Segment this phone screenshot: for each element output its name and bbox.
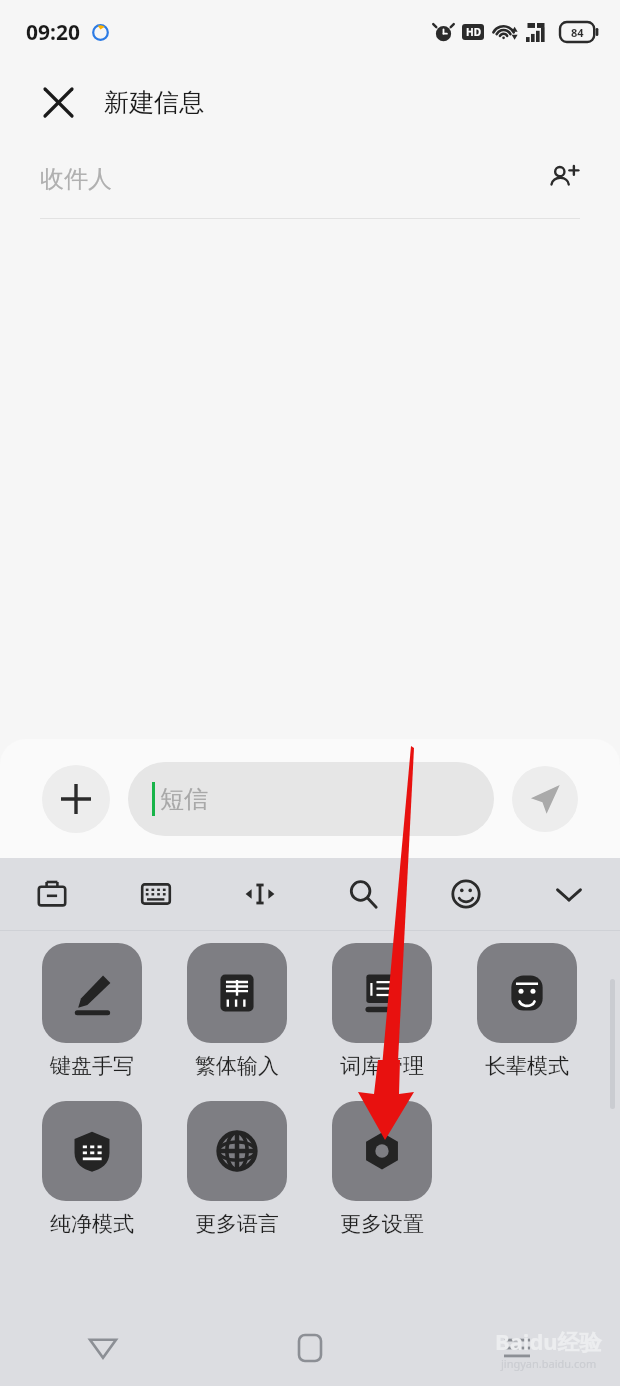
- button[interactable]: Add attachment: [42, 765, 110, 833]
- staticText: 短信: [160, 784, 208, 814]
- staticText: 长辈模式: [485, 1053, 569, 1079]
- button[interactable]: 短信: [152, 762, 494, 836]
- button[interactable]: Send: [512, 766, 578, 832]
- button[interactable]: Search: [311, 858, 414, 930]
- staticText: HD: [466, 25, 481, 39]
- staticText: 收件人: [40, 164, 112, 194]
- button[interactable]: Back: [0, 1310, 206, 1386]
- button[interactable]: Recents: [413, 1310, 620, 1386]
- button[interactable]: 更多设置: [332, 1101, 432, 1237]
- button[interactable]: 更多语言: [187, 1101, 287, 1237]
- staticText: 更多语言: [195, 1211, 279, 1237]
- button[interactable]: 键盘手写: [42, 943, 142, 1079]
- staticText: 词库管理: [340, 1053, 424, 1079]
- button[interactable]: Emoji: [414, 858, 517, 930]
- staticText: Baidu经验: [495, 1326, 602, 1356]
- staticText: 键盘手写: [50, 1053, 134, 1079]
- staticText: 更多设置: [340, 1211, 424, 1237]
- button[interactable]: Add contact: [540, 156, 586, 202]
- button[interactable]: 纯净模式: [42, 1101, 142, 1237]
- staticText: 84: [571, 25, 584, 40]
- staticText: 纯净模式: [50, 1211, 134, 1237]
- button[interactable]: 繁体输入: [187, 943, 287, 1079]
- staticText: 繁体输入: [195, 1053, 279, 1079]
- button[interactable]: Collapse: [517, 858, 620, 930]
- button[interactable]: 收件人: [40, 140, 586, 218]
- button[interactable]: Close: [34, 78, 82, 126]
- button[interactable]: Keyboard: [104, 858, 208, 930]
- staticText: jingyan.baidu.com: [501, 1356, 597, 1371]
- button[interactable]: 词库管理: [332, 943, 432, 1079]
- button[interactable]: 长辈模式: [477, 943, 577, 1079]
- button[interactable]: Clipboard: [0, 858, 104, 930]
- button[interactable]: Cursor: [208, 858, 311, 930]
- staticText: 新建信息: [104, 87, 204, 118]
- button[interactable]: Home: [206, 1310, 413, 1386]
- staticText: 09:20: [26, 18, 80, 47]
